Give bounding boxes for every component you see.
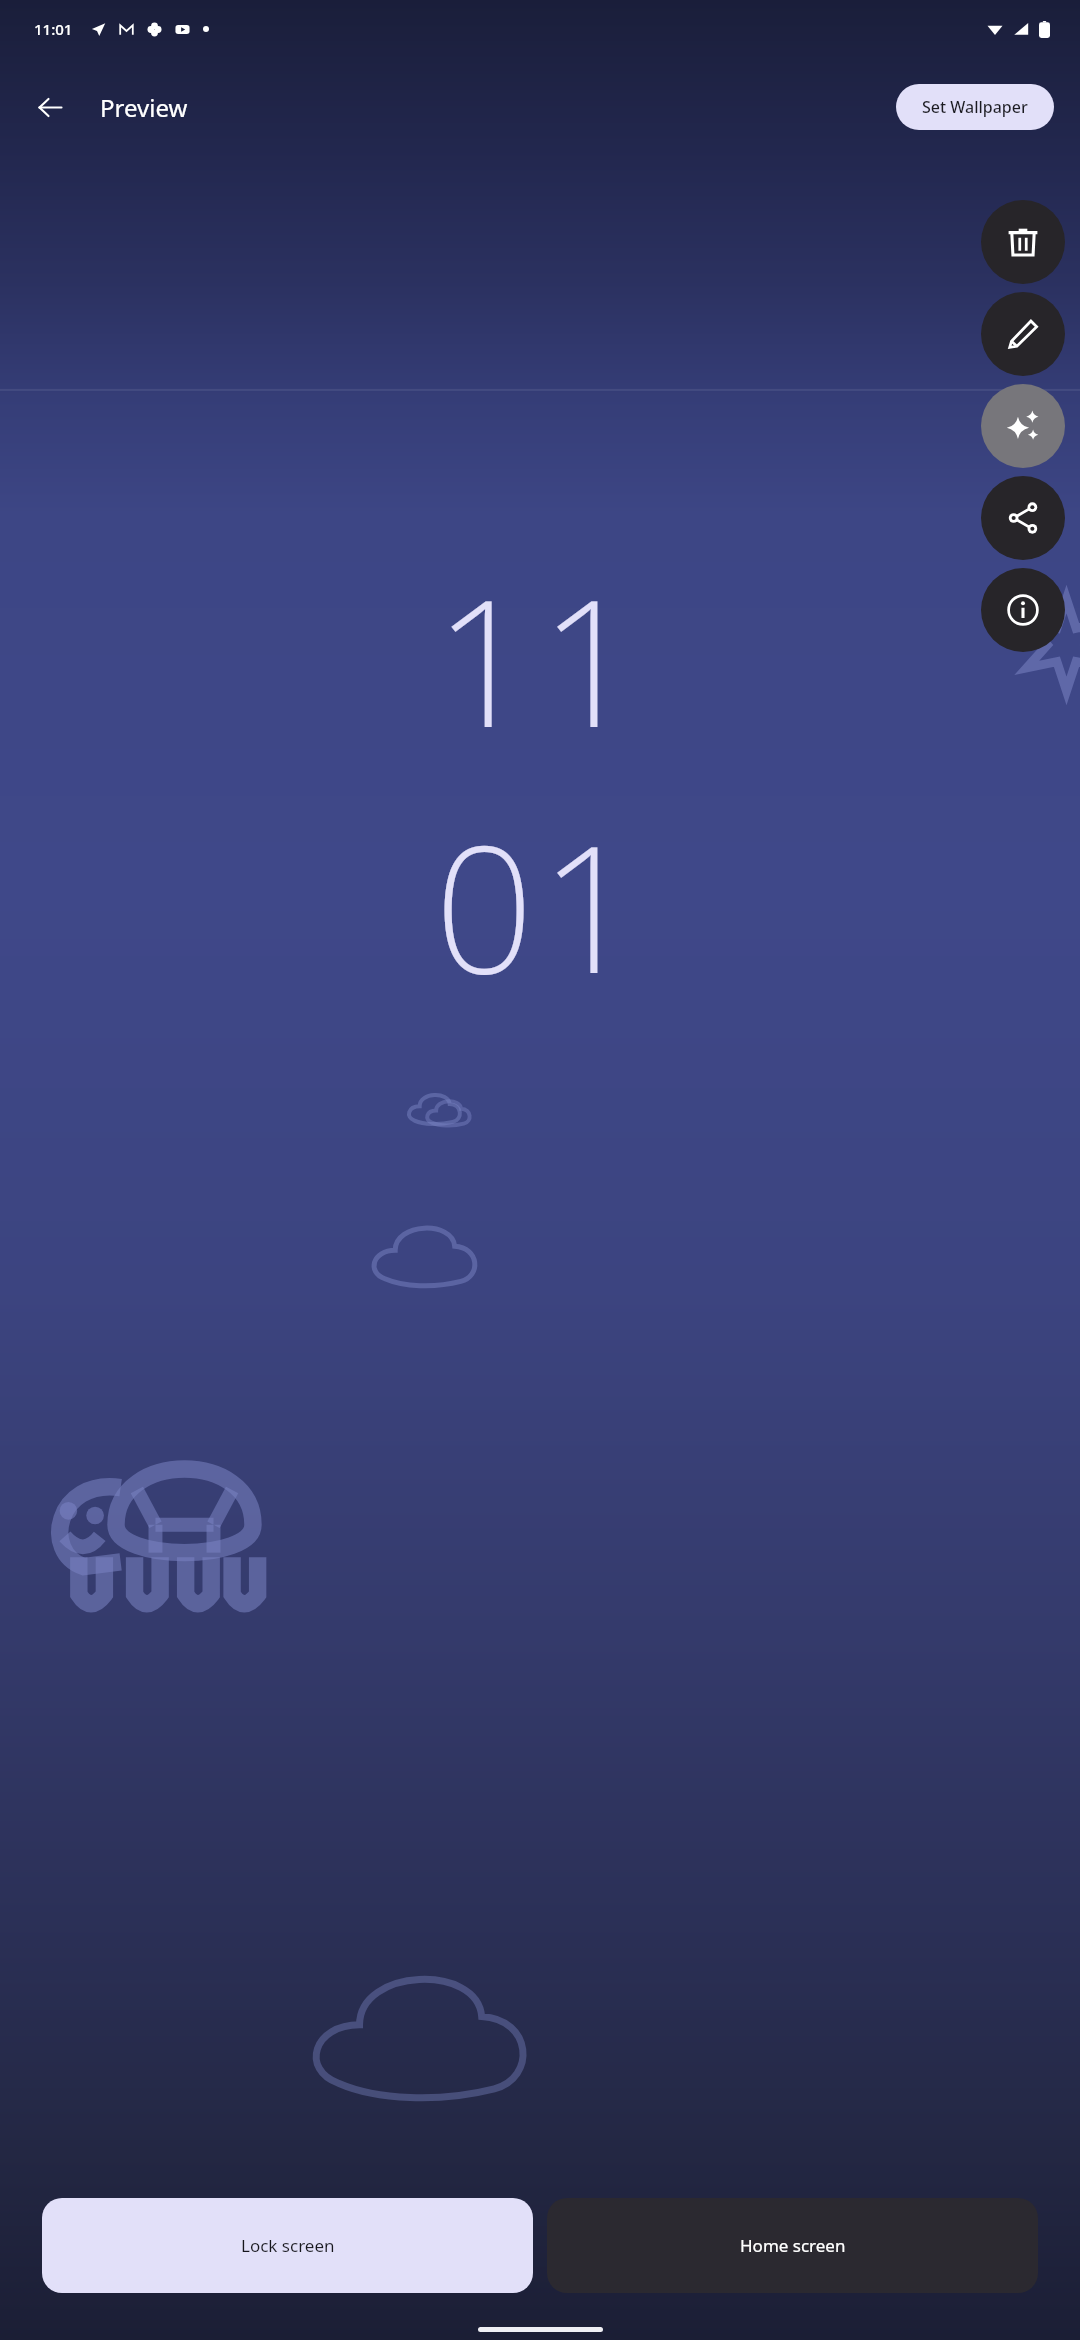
staticText: Home screen bbox=[740, 2234, 846, 2257]
staticText: 11 bbox=[434, 540, 646, 778]
staticText: Set Wallpaper bbox=[922, 96, 1028, 118]
staticText: 11:01 bbox=[34, 19, 73, 39]
button[interactable]: Delete bbox=[981, 200, 1065, 284]
button[interactable]: Back bbox=[26, 83, 74, 131]
button[interactable]: Set Wallpaper bbox=[896, 84, 1054, 130]
staticText: 01 bbox=[434, 786, 646, 1024]
button[interactable]: Edit bbox=[981, 292, 1065, 376]
staticText: Lock screen bbox=[241, 2234, 335, 2257]
button[interactable]: Info bbox=[981, 568, 1065, 652]
staticText: Preview bbox=[100, 91, 188, 124]
button[interactable]: Home screen bbox=[547, 2198, 1038, 2293]
button[interactable]: Lock screen bbox=[42, 2198, 533, 2293]
button[interactable]: Effects bbox=[981, 384, 1065, 468]
button[interactable]: Share bbox=[981, 476, 1065, 560]
